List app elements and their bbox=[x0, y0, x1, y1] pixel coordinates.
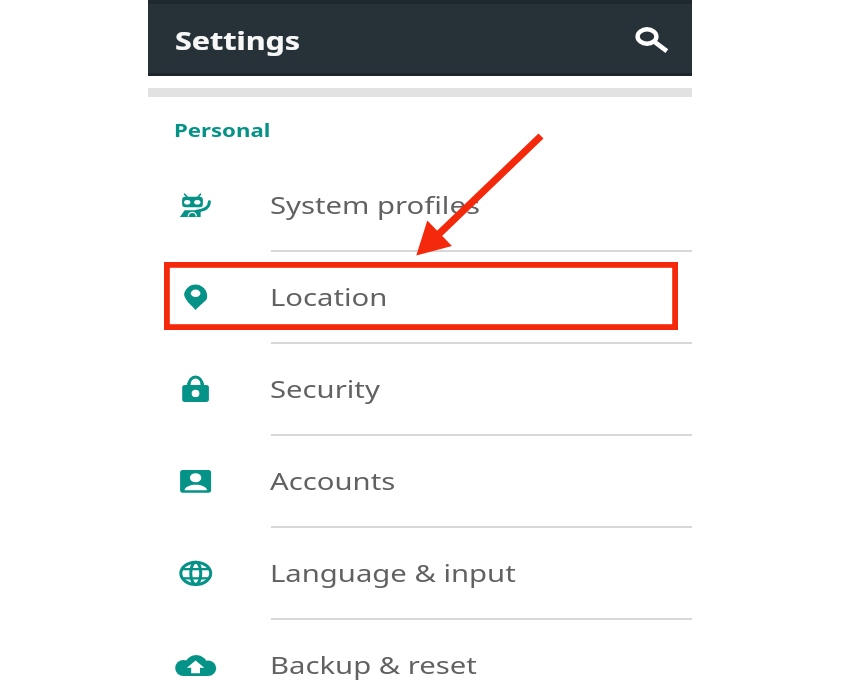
staticText: Settings bbox=[175, 24, 301, 57]
staticText: Accounts bbox=[270, 465, 396, 497]
staticText: Personal bbox=[174, 118, 271, 142]
staticText: Security bbox=[270, 373, 381, 405]
staticText: System profiles bbox=[270, 189, 481, 221]
staticText: Language & input bbox=[270, 557, 516, 589]
staticText: Location bbox=[270, 281, 389, 313]
button[interactable]: Location bbox=[148, 251, 692, 343]
button[interactable]: Backup & reset bbox=[148, 619, 692, 700]
button[interactable]: System profiles bbox=[148, 159, 692, 251]
button[interactable]: Security bbox=[148, 343, 692, 435]
button[interactable]: Accounts bbox=[148, 435, 692, 527]
staticText: Backup & reset bbox=[270, 649, 477, 681]
button[interactable]: Language & input bbox=[148, 527, 692, 619]
button[interactable]: Search bbox=[623, 12, 671, 60]
